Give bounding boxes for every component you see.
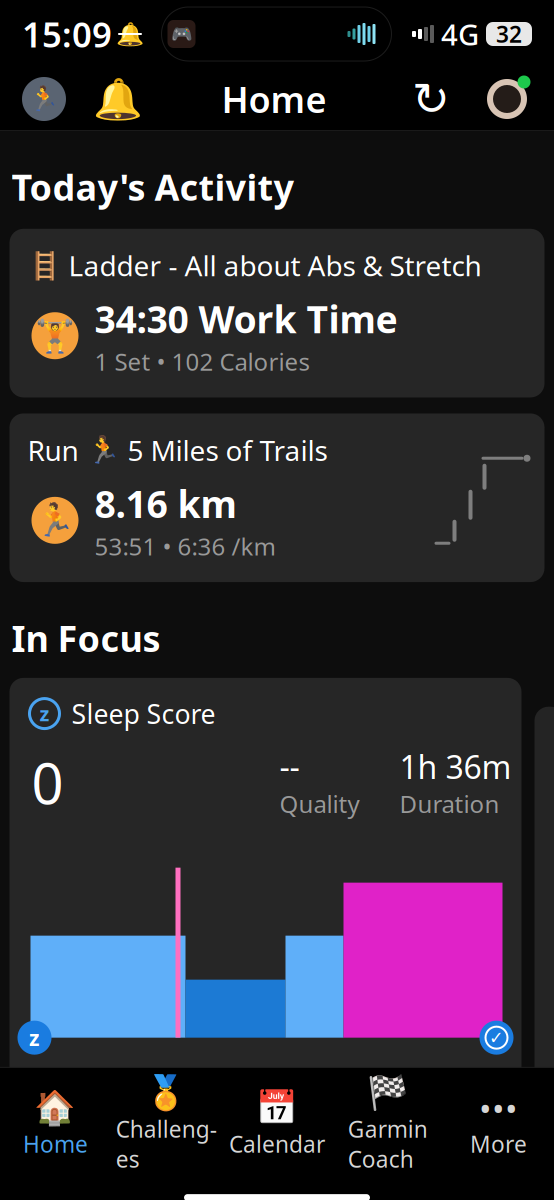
staticText: ••• xyxy=(479,1086,518,1130)
button[interactable]: ••• xyxy=(443,1083,554,1171)
staticText: 🪜 xyxy=(27,250,60,281)
staticText: 🎮 xyxy=(170,24,192,44)
staticText: 34:30 Work Time xyxy=(94,294,397,344)
staticText: 1 Set • 102 Calories xyxy=(94,346,309,377)
button[interactable]: Profile xyxy=(22,77,66,121)
button[interactable]: 🏁 xyxy=(332,1068,443,1186)
staticText: 8.16 km xyxy=(94,479,236,528)
staticText: 🏅 xyxy=(145,1074,187,1112)
staticText: 🏠 xyxy=(34,1089,76,1127)
staticText: More xyxy=(470,1129,527,1159)
staticText: ↻ xyxy=(412,73,450,125)
staticText: 23:39 xyxy=(31,1062,93,1094)
button[interactable]: 🏅 xyxy=(111,1068,222,1186)
staticText: Today's Activity xyxy=(11,163,294,211)
button[interactable]: 🪜 xyxy=(9,229,544,397)
staticText: Home xyxy=(23,1129,88,1159)
staticText: 📅 xyxy=(256,1089,298,1127)
staticText: 15:09 xyxy=(22,11,112,57)
button[interactable]: Run xyxy=(9,413,544,582)
staticText: 🔔 xyxy=(116,21,144,47)
staticText: Home xyxy=(221,75,326,123)
staticText: Garmin Coach xyxy=(348,1114,428,1174)
staticText: 5 Miles of Trails xyxy=(127,431,327,469)
staticText: Run xyxy=(27,431,78,469)
staticText: z xyxy=(29,1023,40,1052)
staticText: 1h 36m xyxy=(399,745,511,788)
staticText: 01:16 xyxy=(437,1062,499,1094)
staticText: Duration xyxy=(399,788,499,820)
staticText: ✓ xyxy=(489,1028,504,1047)
button[interactable]: z xyxy=(9,678,521,1116)
staticText: Challenges xyxy=(116,1114,217,1174)
staticText: Sleep Score xyxy=(71,696,215,731)
button[interactable]: My device xyxy=(482,74,532,124)
button[interactable]: Sync xyxy=(408,76,454,122)
staticText: -- xyxy=(279,745,299,788)
staticText: 🏋 xyxy=(35,317,75,354)
staticText: Ladder - All about Abs & Stretch xyxy=(68,247,481,284)
staticText: 4G xyxy=(441,14,479,53)
staticText: 53:51 • 6:36 /km xyxy=(94,530,275,562)
staticText: z xyxy=(39,700,49,727)
staticText: 🔔 xyxy=(93,76,143,122)
staticText: 32 xyxy=(496,19,522,49)
staticText: Calendar xyxy=(229,1129,325,1159)
button[interactable]: Notifications xyxy=(96,77,140,121)
staticText: Quality xyxy=(279,788,359,820)
staticText: 🏃 xyxy=(86,435,119,465)
staticText: 🏁 xyxy=(367,1074,409,1112)
staticText: 0 xyxy=(31,745,63,820)
button[interactable]: 📅 xyxy=(222,1083,332,1171)
staticText: 🏃 xyxy=(29,85,59,113)
button[interactable]: 🏠 xyxy=(0,1083,111,1171)
staticText: 🏃 xyxy=(35,502,75,539)
staticText: In Focus xyxy=(11,614,160,662)
